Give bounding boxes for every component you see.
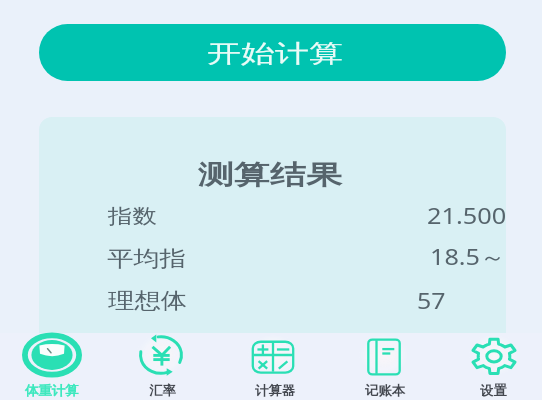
staticText: 57 [417,285,446,315]
button[interactable]: 体重计算 [0,333,107,400]
staticText: 计算器 [255,382,296,398]
button[interactable]: 计算器 [218,333,328,400]
button[interactable]: 开始计算 [39,24,506,81]
staticText: 18.5～ [430,241,506,271]
staticText: 理想体 [108,287,188,314]
staticText: 体重计算 [25,382,79,398]
staticText: 测算结果 [198,158,342,191]
staticText: 指数 [108,204,157,229]
button[interactable]: 汇率 [106,333,216,400]
button[interactable]: 记账本 [329,333,439,400]
staticText: 设置 [480,382,507,398]
staticText: 记账本 [365,382,406,398]
button[interactable]: 设置 [439,333,542,400]
staticText: 平均指 [107,245,186,272]
staticText: 开始计算 [207,38,343,69]
staticText: 21.500 [427,200,507,230]
staticText: 汇率 [149,382,176,398]
